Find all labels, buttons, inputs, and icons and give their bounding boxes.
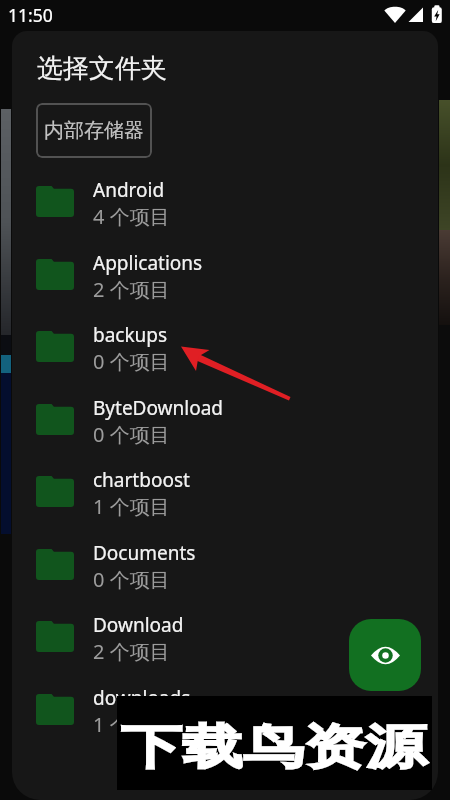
staticText: Download [93,612,184,638]
staticText: 2 个项目 [93,276,170,303]
staticText: ByteDownload [93,395,224,421]
staticText: 0 个项目 [93,421,170,448]
button[interactable]: backups [12,331,438,403]
button[interactable]: 内部存储器 [36,103,152,158]
button[interactable]: Documents [12,549,438,621]
staticText: downloads [93,685,191,711]
staticText: chartboost [93,467,190,493]
button[interactable]: ByteDownload [12,404,438,476]
staticText: 内部存储器 [44,118,144,143]
staticText: 2 个项目 [93,638,170,665]
button[interactable]: Applications [12,259,438,331]
staticText: 1 个项目 [93,711,170,738]
staticText: 4 个项目 [93,203,170,230]
staticText: Documents [93,540,196,566]
staticText: 0 个项目 [93,348,170,375]
button[interactable]: Preview [349,619,421,691]
staticText: 0 个项目 [93,566,170,593]
button[interactable]: downloads [12,694,438,766]
staticText: Android [93,177,165,203]
staticText: 选择文件夹 [37,52,167,85]
button[interactable]: Download [12,621,438,693]
staticText: 11:50 [8,3,53,27]
staticText: 下载鸟资源 [121,718,426,777]
staticText: Applications [93,250,203,276]
staticText: backups [93,322,168,348]
staticText: 1 个项目 [93,493,170,520]
button[interactable]: chartboost [12,476,438,548]
button[interactable]: Android [12,186,438,258]
